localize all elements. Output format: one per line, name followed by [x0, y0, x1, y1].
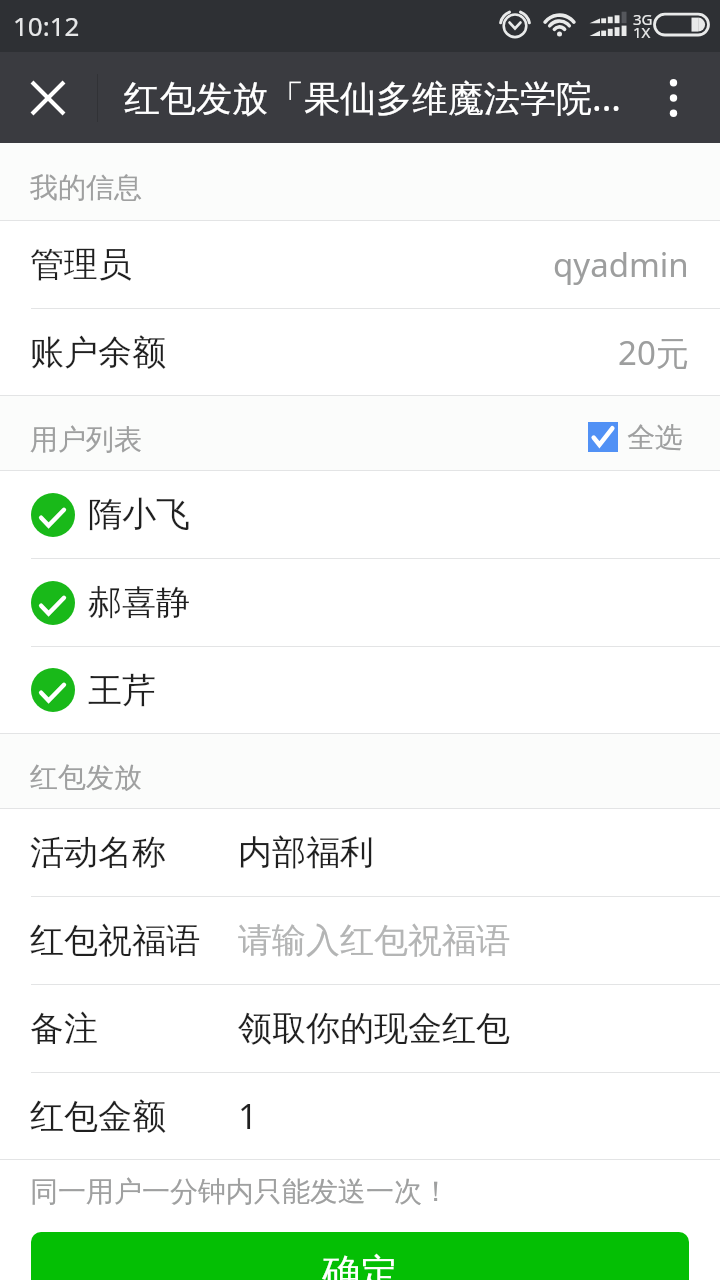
staticText: 3G: [633, 9, 653, 29]
button[interactable]: 账户余额: [0, 309, 720, 395]
staticText: 红包发放: [30, 760, 142, 795]
button[interactable]: 隋小飞: [0, 471, 720, 558]
staticText: 隋小飞: [88, 493, 190, 536]
staticText: 1: [238, 1093, 258, 1139]
staticText: 红包金额: [30, 1095, 166, 1138]
button[interactable]: 红包祝福语: [0, 897, 720, 984]
button[interactable]: 王芹: [0, 647, 720, 733]
staticText: 1X: [633, 22, 651, 42]
staticText: 郝喜静: [88, 581, 190, 624]
staticText: qyadmin: [553, 242, 689, 287]
staticText: 管理员: [30, 243, 132, 286]
button[interactable]: 活动名称: [0, 809, 720, 896]
staticText: 10:12: [13, 8, 80, 43]
staticText: 内部福利: [238, 831, 374, 874]
staticText: 红包发放「果仙多维魔法学院...: [124, 73, 621, 122]
button[interactable]: 管理员: [0, 221, 720, 308]
staticText: 请输入红包祝福语: [238, 919, 510, 962]
button[interactable]: 红包金额: [0, 1073, 720, 1159]
button[interactable]: More options: [638, 52, 720, 143]
staticText: 同一用户一分钟内只能发送一次！: [30, 1174, 450, 1209]
staticText: 用户列表: [30, 422, 142, 457]
staticText: 备注: [30, 1007, 98, 1050]
button[interactable]: 备注: [0, 985, 720, 1072]
staticText: 我的信息: [30, 170, 142, 205]
button[interactable]: Close: [0, 52, 96, 143]
button[interactable]: 郝喜静: [0, 559, 720, 646]
staticText: 领取你的现金红包: [238, 1007, 510, 1050]
staticText: 账户余额: [30, 331, 166, 374]
staticText: 20元: [618, 330, 689, 375]
staticText: 确定: [322, 1249, 398, 1280]
button[interactable]: 全选: [588, 400, 720, 474]
staticText: 红包祝福语: [30, 919, 200, 962]
staticText: 活动名称: [30, 831, 166, 874]
staticText: 王芹: [88, 669, 156, 712]
button[interactable]: 确定: [31, 1232, 689, 1280]
staticText: 全选: [627, 420, 683, 455]
